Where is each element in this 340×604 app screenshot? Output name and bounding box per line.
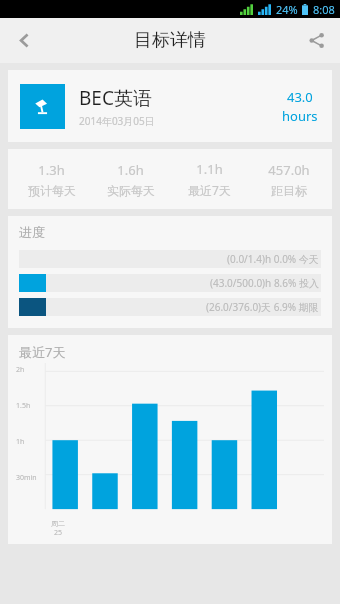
staticText: (43.0/500.0)h 8.6% 投入 — [210, 276, 319, 290]
button[interactable]: 457.0h — [249, 161, 328, 198]
staticText: 24% — [276, 2, 298, 17]
staticText: 1h — [16, 437, 25, 447]
staticText: 最近7天 — [19, 343, 66, 361]
staticText: 2h — [16, 365, 25, 375]
staticText: BEC英语 — [79, 85, 152, 111]
staticText: 1.3h — [38, 161, 65, 179]
staticText: 预计每天 — [28, 183, 76, 198]
button[interactable]: (26.0/376.0)天 6.9% 期限 — [19, 298, 321, 316]
staticText: 距目标 — [271, 183, 307, 198]
staticText: 30min — [16, 473, 37, 483]
staticText: 2014年03月05日 — [79, 114, 155, 128]
button[interactable]: BEC英语 — [8, 70, 332, 142]
staticText: (26.0/376.0)天 6.9% 期限 — [206, 300, 319, 314]
staticText: 周二 — [51, 519, 65, 528]
staticText: 8:08 — [313, 2, 335, 17]
button[interactable]: 1.3h — [12, 161, 91, 198]
staticText: 1.1h — [196, 160, 223, 178]
staticText: 25 — [54, 528, 63, 538]
staticText: 进度 — [19, 224, 45, 240]
staticText: 457.0h — [268, 161, 310, 179]
staticText: 1.6h — [117, 161, 144, 179]
staticText: 目标详情 — [134, 29, 206, 52]
button[interactable]: 1.1h — [170, 160, 249, 198]
button[interactable]: Share — [292, 18, 340, 63]
staticText: 实际每天 — [107, 183, 155, 198]
button[interactable]: Back — [0, 18, 48, 63]
staticText: 1.5h — [16, 401, 31, 411]
button[interactable]: 1.6h — [91, 161, 170, 198]
button[interactable]: (43.0/500.0)h 8.6% 投入 — [19, 274, 321, 292]
button[interactable] — [16, 363, 324, 538]
staticText: 最近7天 — [188, 182, 231, 198]
button[interactable]: (0.0/1.4)h 0.0% 今天 — [19, 250, 321, 268]
staticText: (0.0/1.4)h 0.0% 今天 — [227, 252, 319, 266]
staticText: 43.0 — [287, 88, 313, 106]
staticText: hours — [282, 107, 318, 125]
